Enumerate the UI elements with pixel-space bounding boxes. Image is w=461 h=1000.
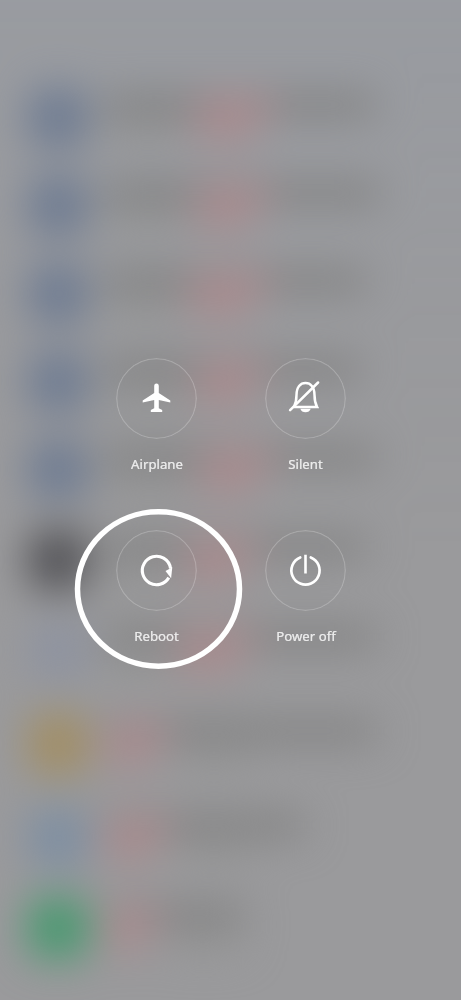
- staticText: Power off: [276, 627, 336, 645]
- staticText: Reboot: [134, 627, 179, 645]
- button[interactable]: Silent: [230, 350, 380, 487]
- staticText: Silent: [288, 455, 323, 473]
- button[interactable]: Power off: [230, 522, 380, 659]
- button[interactable]: Reboot: [81, 522, 231, 659]
- staticText: Airplane: [131, 455, 183, 473]
- button[interactable]: Airplane: [81, 350, 231, 487]
